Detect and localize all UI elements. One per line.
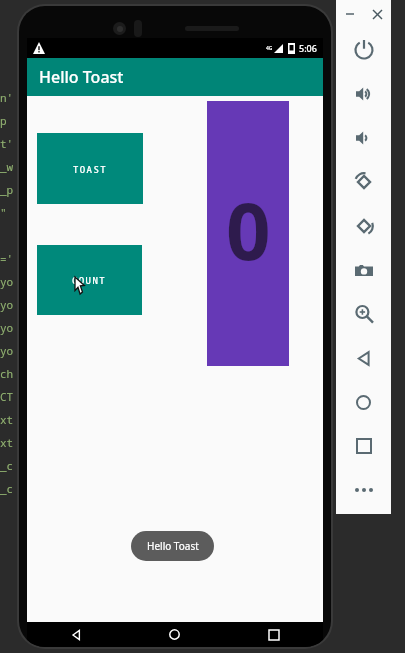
button[interactable]: Home: [336, 380, 391, 424]
staticText: 4G: [266, 45, 273, 52]
button[interactable]: Recent apps: [224, 622, 323, 647]
button[interactable]: Rotate left: [336, 160, 391, 204]
staticText: _c: [0, 458, 14, 473]
button[interactable]: Zoom: [336, 292, 391, 336]
button[interactable]: Power: [336, 28, 391, 72]
staticText: Hello Toast: [39, 66, 124, 88]
staticText: yo: [0, 320, 14, 335]
button[interactable]: More: [336, 468, 391, 512]
button[interactable]: Close: [363, 0, 391, 28]
button[interactable]: Home: [125, 622, 224, 647]
button[interactable]: Recent apps: [336, 424, 391, 468]
button[interactable]: Back: [336, 336, 391, 380]
staticText: p: [0, 113, 7, 128]
staticText: 5:06: [299, 42, 317, 54]
staticText: ": [0, 205, 7, 220]
button[interactable]: Rotate right: [336, 204, 391, 248]
staticText: _c: [0, 481, 14, 496]
staticText: yo: [0, 297, 14, 312]
button[interactable]: COUNT: [37, 245, 142, 315]
staticText: TOAST: [73, 163, 108, 175]
staticText: n': [0, 90, 14, 105]
staticText: Hello Toast: [147, 539, 199, 553]
staticText: yo: [0, 274, 14, 289]
staticText: CT: [0, 389, 14, 404]
staticText: ch: [0, 366, 14, 381]
staticText: COUNT: [72, 274, 107, 286]
button[interactable]: TOAST: [37, 133, 143, 204]
staticText: 0: [226, 177, 271, 283]
button[interactable]: Volume down: [336, 116, 391, 160]
staticText: _p: [0, 182, 14, 197]
staticText: t': [0, 136, 14, 151]
button[interactable]: Back: [27, 622, 125, 647]
staticText: _w: [0, 159, 14, 174]
staticText: xt: [0, 412, 14, 427]
staticText: yo: [0, 343, 14, 358]
button[interactable]: Take screenshot: [336, 248, 391, 292]
staticText: =': [0, 251, 14, 266]
button[interactable]: Minimize: [336, 0, 363, 28]
staticText: xt: [0, 435, 14, 450]
button[interactable]: Volume up: [336, 72, 391, 116]
